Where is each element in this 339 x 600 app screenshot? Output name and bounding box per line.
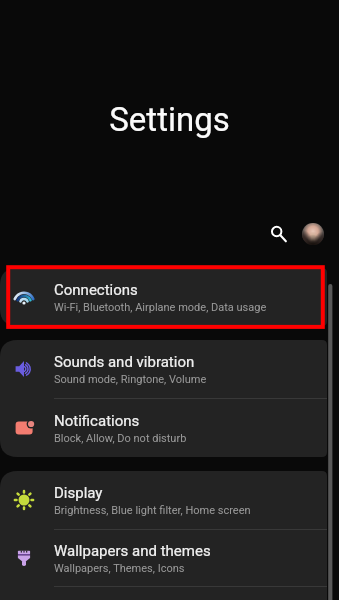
button[interactable]: Search	[252, 215, 290, 253]
button[interactable]: Notifications	[0, 399, 327, 457]
staticText: Connections	[54, 281, 138, 299]
button[interactable]: Account	[294, 215, 332, 253]
button[interactable]: Connections	[0, 268, 327, 326]
staticText: Display	[54, 484, 103, 502]
staticText: Sound mode, Ringtone, Volume	[54, 373, 207, 386]
staticText: Sounds and vibration	[54, 353, 195, 371]
staticText: Wi-Fi, Bluetooth, Airplane mode, Data us…	[54, 301, 267, 314]
button[interactable]: Display	[0, 471, 327, 529]
button[interactable]: Wallpapers and themes	[0, 530, 327, 586]
staticText: Notifications	[54, 412, 140, 430]
staticText: Wallpapers, Themes, Icons	[54, 562, 185, 575]
button[interactable]: Sounds and vibration	[0, 340, 327, 398]
staticText: Wallpapers and themes	[54, 542, 211, 560]
staticText: Block, Allow, Do not disturb	[54, 432, 187, 445]
staticText: Brightness, Blue light filter, Home scre…	[54, 504, 251, 517]
staticText: Settings	[109, 100, 230, 139]
